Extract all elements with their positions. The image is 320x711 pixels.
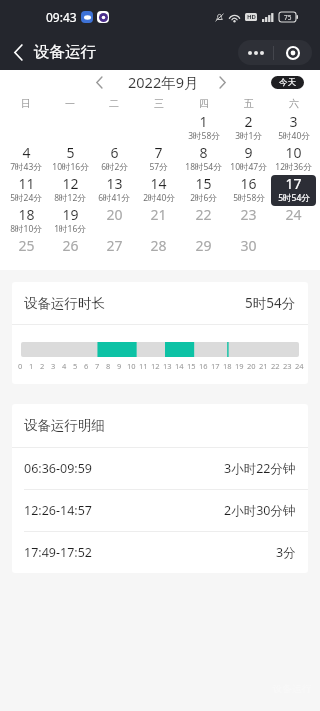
staticText: 1 [199, 112, 208, 131]
staticText: 8 [106, 361, 111, 371]
staticText: 14 [175, 361, 184, 371]
staticText: 29 [195, 236, 212, 255]
button[interactable]: 4 [4, 144, 48, 175]
button[interactable]: 06:36-09:59 [12, 448, 308, 489]
button[interactable]: 18 [4, 206, 48, 237]
staticText: 22 [195, 205, 212, 224]
button[interactable]: 27 [92, 237, 136, 268]
staticText: 5时40分 [278, 130, 310, 142]
staticText: 17:49-17:52 [24, 544, 92, 561]
staticText: 11 [18, 174, 35, 193]
button[interactable]: 26 [48, 237, 92, 268]
staticText: 14 [150, 174, 167, 193]
button[interactable]: 25 [4, 237, 48, 268]
staticText: 6 [110, 143, 119, 162]
button[interactable]: 12 [48, 175, 92, 206]
button[interactable]: 23 [226, 206, 271, 237]
staticText: 四 [199, 97, 209, 110]
button[interactable]: More options [238, 40, 273, 65]
button[interactable]: 14 [136, 175, 181, 206]
button[interactable]: 9 [226, 144, 271, 175]
staticText: 六 [289, 97, 299, 110]
staticText: 16 [240, 174, 257, 193]
button[interactable]: 30 [226, 237, 271, 268]
staticText: 27 [106, 236, 123, 255]
button[interactable]: Previous month [86, 70, 112, 94]
staticText: 5 [73, 361, 78, 371]
staticText: 3时58分 [188, 130, 220, 142]
button[interactable]: 21 [136, 206, 181, 237]
staticText: 26 [62, 236, 79, 255]
button[interactable]: 13 [92, 175, 136, 206]
staticText: 24 [295, 361, 304, 371]
button[interactable]: 28 [136, 237, 181, 268]
staticText: 9 [244, 143, 253, 162]
button[interactable]: 19 [48, 206, 92, 237]
staticText: 23 [240, 205, 257, 224]
staticText: 4 [22, 143, 31, 162]
staticText: 3时1分 [235, 130, 262, 142]
button[interactable]: 24 [271, 206, 316, 237]
staticText: 6 [84, 361, 89, 371]
button[interactable]: 17:49-17:52 [12, 532, 308, 573]
staticText: 11 [139, 361, 148, 371]
staticText: 13 [163, 361, 172, 371]
button[interactable]: 15 [181, 175, 226, 206]
button[interactable]: 11 [4, 175, 48, 206]
staticText: 3分 [276, 544, 296, 561]
staticText: 06:36-09:59 [24, 460, 92, 477]
staticText: 3小时22分钟 [224, 460, 296, 477]
button[interactable]: 7 [136, 144, 181, 175]
staticText: 19 [235, 361, 244, 371]
staticText: 设备运行明细 [24, 417, 105, 434]
staticText: 2022年9月 [128, 72, 199, 92]
staticText: 一 [65, 97, 75, 110]
staticText: 6时2分 [101, 161, 128, 173]
staticText: 12 [62, 174, 79, 193]
button[interactable]: 22 [181, 206, 226, 237]
staticText: 25 [18, 236, 35, 255]
staticText: 3 [51, 361, 56, 371]
staticText: 5时54分 [245, 294, 296, 312]
staticText: 18时54分 [185, 161, 222, 173]
button[interactable]: 10 [271, 144, 316, 175]
staticText: 15 [187, 361, 196, 371]
button[interactable]: Back [6, 40, 30, 64]
staticText: 5时58分 [233, 192, 265, 204]
staticText: 设备运行 [34, 42, 96, 62]
staticText: 5 [66, 143, 75, 162]
staticText: 18 [18, 205, 35, 224]
staticText: 12:26-14:57 [24, 502, 92, 519]
staticText: 日 [21, 97, 31, 110]
button[interactable]: 16 [226, 175, 271, 206]
staticText: 7 [95, 361, 100, 371]
button[interactable]: 29 [181, 237, 226, 268]
button[interactable]: 12:26-14:57 [12, 490, 308, 531]
staticText: 15 [195, 174, 212, 193]
staticText: 7时43分 [10, 161, 42, 173]
staticText: 3 [289, 112, 298, 131]
staticText: 09:43 [46, 9, 77, 25]
staticText: 13 [106, 174, 123, 193]
staticText: 18 [223, 361, 232, 371]
staticText: 五 [244, 97, 254, 110]
button[interactable]: 6 [92, 144, 136, 175]
staticText: 12时36分 [275, 161, 312, 173]
button[interactable]: 3 [271, 113, 316, 144]
button[interactable]: 20 [92, 206, 136, 237]
staticText: 17 [285, 175, 302, 193]
staticText: 三 [154, 97, 164, 110]
button[interactable]: 1 [181, 113, 226, 144]
button[interactable]: Close mini program [274, 40, 312, 65]
button[interactable]: 8 [181, 144, 226, 175]
button[interactable]: Next month [209, 70, 235, 94]
staticText: 10 [285, 143, 302, 162]
button[interactable]: 2 [226, 113, 271, 144]
button[interactable]: 17 [271, 175, 316, 206]
button[interactable]: 今天 [271, 76, 304, 89]
button[interactable]: 5 [48, 144, 92, 175]
staticText: 20 [106, 205, 123, 224]
staticText: 20 [247, 361, 256, 371]
staticText: 12 [151, 361, 160, 371]
